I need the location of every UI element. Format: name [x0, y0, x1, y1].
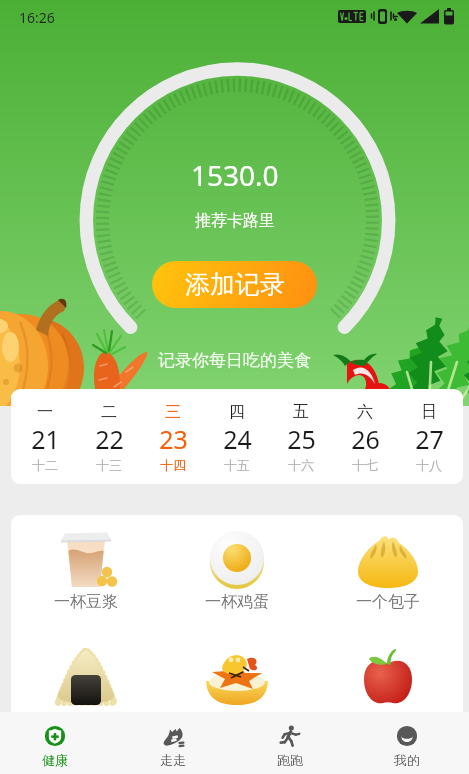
button[interactable]: 添加记录 — [152, 261, 317, 308]
staticText: 五 — [293, 402, 309, 422]
staticText: 1530.0 — [191, 156, 279, 194]
staticText: 24 — [223, 422, 252, 456]
button[interactable]: 六 — [333, 402, 397, 473]
staticText: 26 — [351, 422, 380, 456]
staticText: 一个包子 — [356, 592, 420, 612]
staticText: 十三 — [96, 457, 122, 473]
button[interactable]: 我的 — [348, 719, 465, 768]
button[interactable]: 一 — [13, 402, 77, 473]
button[interactable]: 健康 — [0, 719, 114, 768]
staticText: 记录你每日吃的美食 — [158, 350, 311, 371]
staticText: 25 — [287, 422, 316, 456]
staticText: 日 — [421, 402, 437, 422]
button[interactable]: 走走 — [114, 719, 231, 768]
staticText: 27 — [415, 422, 444, 456]
staticText: 添加记录 — [185, 269, 285, 300]
staticText: 我的 — [394, 752, 420, 768]
staticText: 十五 — [224, 457, 250, 473]
button[interactable]: 二 — [77, 402, 141, 473]
staticText: 推荐卡路里 — [195, 211, 275, 231]
staticText: 21 — [31, 422, 60, 456]
staticText: 22 — [95, 422, 124, 456]
button[interactable]: 跑跑 — [231, 719, 348, 768]
button[interactable]: 食物 — [312, 647, 463, 707]
staticText: 二 — [101, 402, 117, 422]
button[interactable]: 三 — [141, 402, 205, 473]
staticText: 十六 — [288, 457, 314, 473]
button[interactable]: 日 — [397, 402, 461, 473]
button[interactable]: 四 — [205, 402, 269, 473]
staticText: 23 — [159, 422, 188, 456]
staticText: 三 — [165, 402, 181, 422]
staticText: 走走 — [160, 752, 186, 768]
button[interactable]: 一杯豆浆 — [11, 529, 161, 612]
staticText: 四 — [229, 402, 245, 422]
button[interactable]: 食物 — [161, 647, 312, 707]
staticText: 跑跑 — [277, 752, 303, 768]
staticText: 健康 — [42, 752, 68, 768]
staticText: 十四 — [160, 457, 186, 473]
staticText: 十七 — [352, 457, 378, 473]
staticText: 十八 — [416, 457, 442, 473]
staticText: 十二 — [32, 457, 58, 473]
staticText: 一 — [37, 402, 53, 422]
button[interactable]: 食物 — [11, 647, 161, 707]
button[interactable]: 一个包子 — [312, 529, 463, 612]
staticText: 一杯鸡蛋 — [205, 592, 269, 612]
button[interactable]: 一杯鸡蛋 — [161, 529, 312, 612]
staticText: 16:26 — [19, 8, 55, 27]
staticText: 六 — [357, 402, 373, 422]
staticText: 一杯豆浆 — [54, 592, 118, 612]
button[interactable]: 五 — [269, 402, 333, 473]
